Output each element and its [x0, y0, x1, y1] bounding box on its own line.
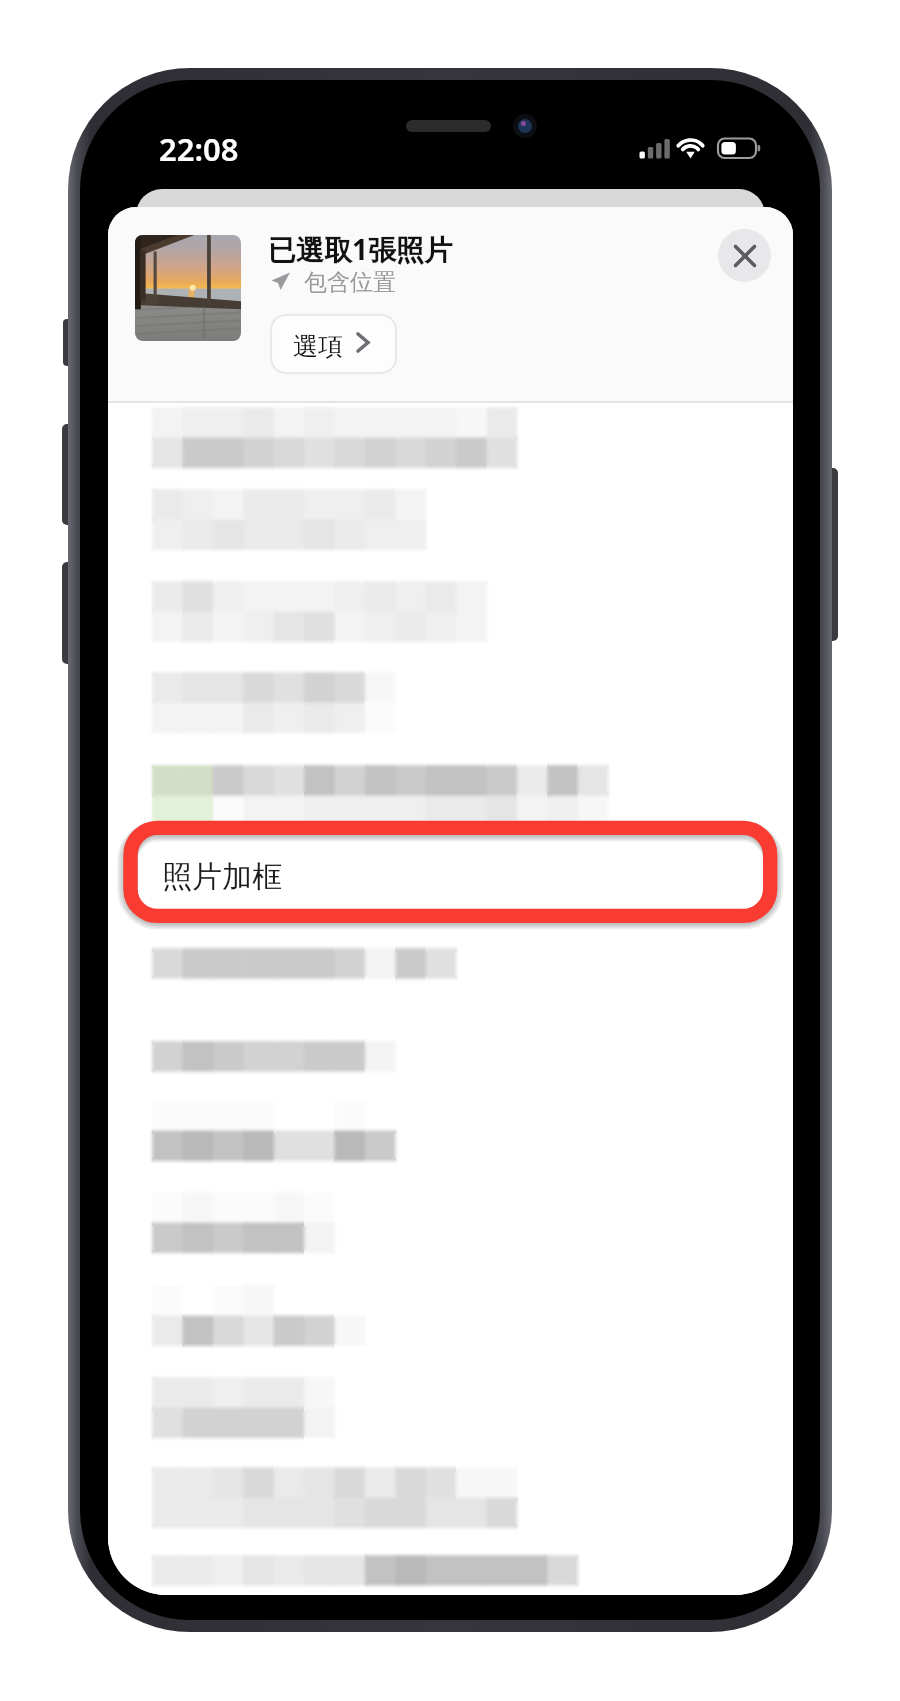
staticText: 已選取1張照片 [268, 230, 453, 268]
button[interactable]: Close [718, 229, 771, 282]
staticText: 照片加框 [162, 858, 282, 896]
staticText: 包含位置 [304, 268, 396, 297]
staticText: 22:08 [159, 128, 239, 170]
staticText: 選項 [293, 331, 343, 362]
button[interactable]: 選項 [270, 314, 397, 374]
button[interactable]: 照片加框 [116, 814, 786, 929]
